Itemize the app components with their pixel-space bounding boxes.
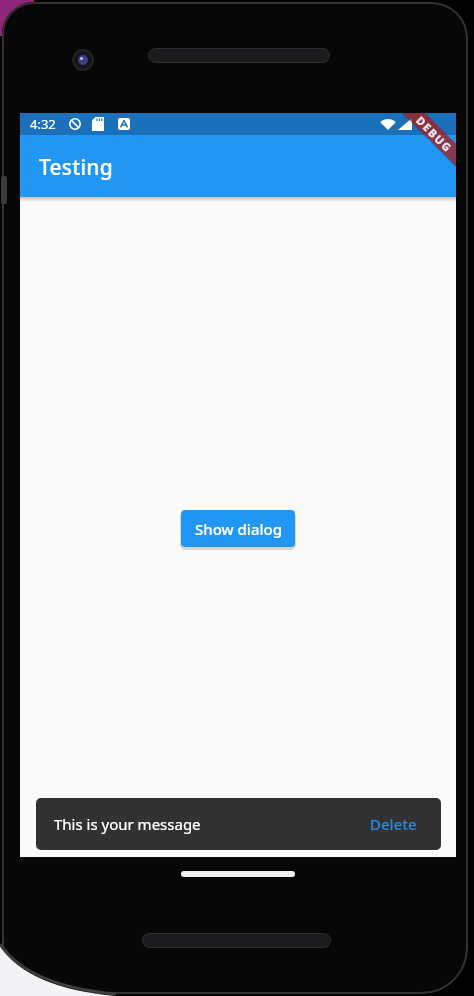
staticText: Show dialog: [195, 519, 282, 539]
button[interactable]: Show dialog: [181, 510, 295, 547]
staticText: DEBUG: [413, 113, 456, 156]
staticText: 4:32: [30, 115, 56, 133]
button[interactable]: This is your message: [36, 798, 441, 850]
staticText: This is your message: [54, 814, 201, 834]
staticText: Testing: [39, 153, 113, 182]
button[interactable]: Delete: [370, 814, 417, 834]
